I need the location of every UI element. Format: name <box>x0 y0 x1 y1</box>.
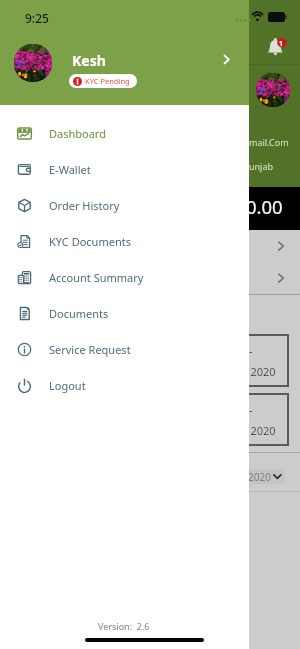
button[interactable]: Service Request <box>0 331 249 367</box>
button[interactable]: Dashboard <box>0 115 249 151</box>
staticText: E-Wallet <box>49 162 91 177</box>
staticText: ka - <box>234 343 253 358</box>
button[interactable]: Open <box>0 230 300 262</box>
staticText: Jan 2020 <box>231 470 271 484</box>
staticText: unjab <box>249 160 274 172</box>
button[interactable]: Documents <box>0 295 249 331</box>
staticText: KYC Pending <box>85 76 130 86</box>
staticText: Order History <box>49 198 120 213</box>
button[interactable]: KYC Documents <box>0 223 249 259</box>
button[interactable]: Jan 2020 <box>206 469 285 484</box>
button[interactable]: ka - <box>0 393 289 446</box>
staticText: Service Request <box>49 342 131 357</box>
staticText: 1 <box>279 39 284 49</box>
button[interactable]: Profile <box>214 47 238 71</box>
staticText: Logout <box>49 378 86 393</box>
staticText: KYC Documents <box>49 234 131 249</box>
staticText: ka - <box>234 402 253 417</box>
button[interactable]: Open <box>0 262 300 294</box>
staticText: un 2020 <box>234 423 276 438</box>
staticText: mail.Com <box>249 136 289 148</box>
button[interactable]: Order History <box>0 187 249 223</box>
button[interactable]: ka - <box>0 334 289 387</box>
staticText: 0.00 <box>246 194 283 219</box>
staticText: Documents <box>49 306 109 321</box>
staticText: Dashboard <box>49 126 106 141</box>
button[interactable]: E-Wallet <box>0 151 249 187</box>
staticText: Version: 2.6 <box>98 620 150 632</box>
button[interactable]: Account Summary <box>0 259 249 295</box>
button[interactable]: Notifications <box>265 36 287 58</box>
staticText: Kesh <box>72 51 106 70</box>
staticText: un 2020 <box>234 364 276 379</box>
staticText: Account Summary <box>49 270 144 285</box>
button[interactable]: Logout <box>0 367 249 403</box>
staticText: 9:25 <box>25 10 49 26</box>
button[interactable]: KYC Pending <box>69 74 137 88</box>
